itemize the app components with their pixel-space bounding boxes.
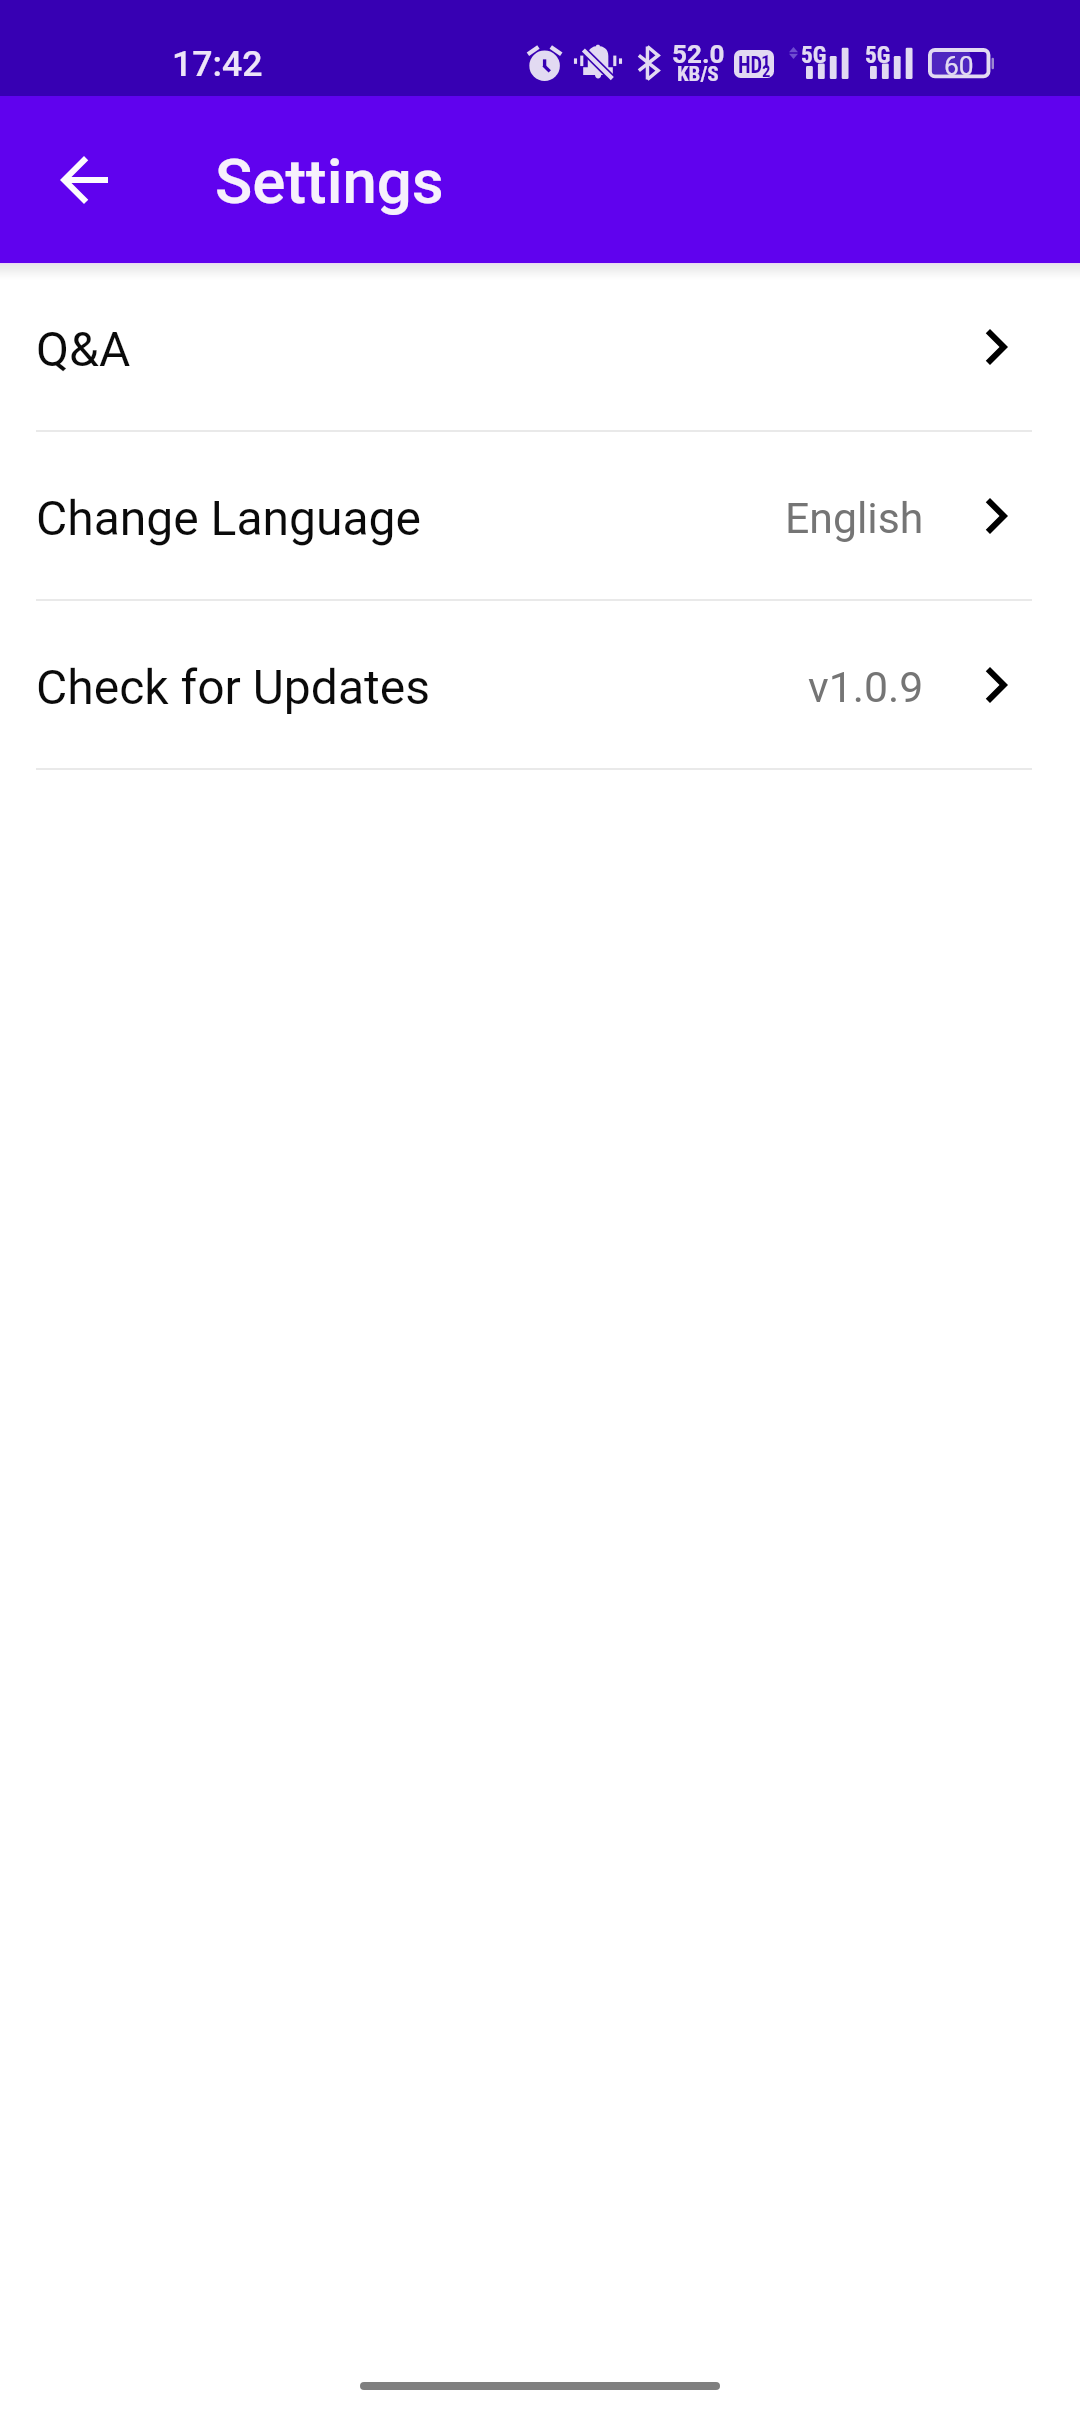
button[interactable]: Q&A: [0, 263, 1080, 430]
staticText: 17:42: [172, 43, 263, 85]
staticText: v1.0.9: [808, 662, 924, 712]
staticText: English: [785, 493, 924, 543]
staticText: KB/S: [677, 62, 719, 87]
staticText: 5G: [801, 41, 827, 68]
staticText: 52.0: [672, 39, 725, 70]
button[interactable]: Change Language: [0, 432, 1080, 599]
staticText: Check for Updates: [36, 659, 430, 715]
button[interactable]: Check for Updates: [0, 601, 1080, 768]
staticText: Q&A: [36, 321, 131, 377]
staticText: Settings: [215, 146, 444, 218]
button[interactable]: Back: [12, 108, 156, 252]
staticText: 1: [761, 50, 771, 73]
staticText: 5G: [865, 41, 891, 68]
staticText: 60: [944, 51, 974, 82]
staticText: HD: [738, 52, 763, 78]
staticText: 2: [762, 61, 771, 78]
staticText: Change Language: [36, 490, 422, 546]
